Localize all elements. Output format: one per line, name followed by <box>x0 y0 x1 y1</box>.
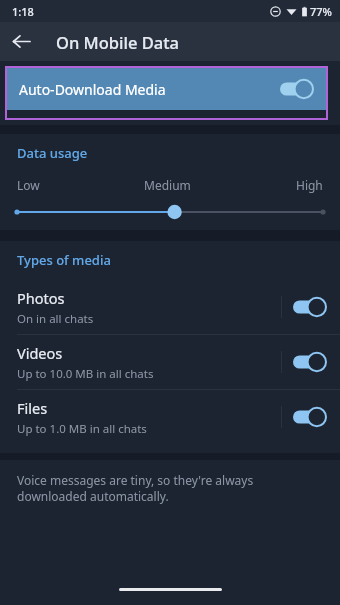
staticText: Voice messages are tiny, so they're alwa… <box>17 472 312 505</box>
button[interactable]: Data usage slider <box>0 201 340 223</box>
staticText: Data usage <box>17 144 88 162</box>
button[interactable]: Files <box>0 390 340 444</box>
button[interactable]: Auto-Download Media <box>5 68 328 110</box>
staticText: On in all chats <box>17 311 94 327</box>
staticText: Videos <box>17 343 63 363</box>
staticText: Files <box>17 398 48 418</box>
staticText: 77% <box>310 4 332 19</box>
staticText: Photos <box>17 288 65 308</box>
staticText: Up to 10.0 MB in all chats <box>17 366 154 382</box>
button[interactable]: Videos <box>0 335 340 389</box>
button[interactable]: Back <box>0 22 42 61</box>
button[interactable]: Photos <box>0 280 340 334</box>
staticText: Medium <box>144 177 191 193</box>
button[interactable]: Files toggle <box>293 407 327 427</box>
staticText: 1:18 <box>12 4 34 19</box>
staticText: Up to 1.0 MB in all chats <box>17 421 147 437</box>
button[interactable]: Videos toggle <box>293 352 327 372</box>
staticText: Low <box>17 177 40 193</box>
button[interactable]: Photos toggle <box>293 297 327 317</box>
staticText: High <box>296 177 323 193</box>
staticText: Auto-Download Media <box>19 80 166 99</box>
staticText: Types of media <box>17 251 111 269</box>
staticText: On Mobile Data <box>56 31 179 53</box>
